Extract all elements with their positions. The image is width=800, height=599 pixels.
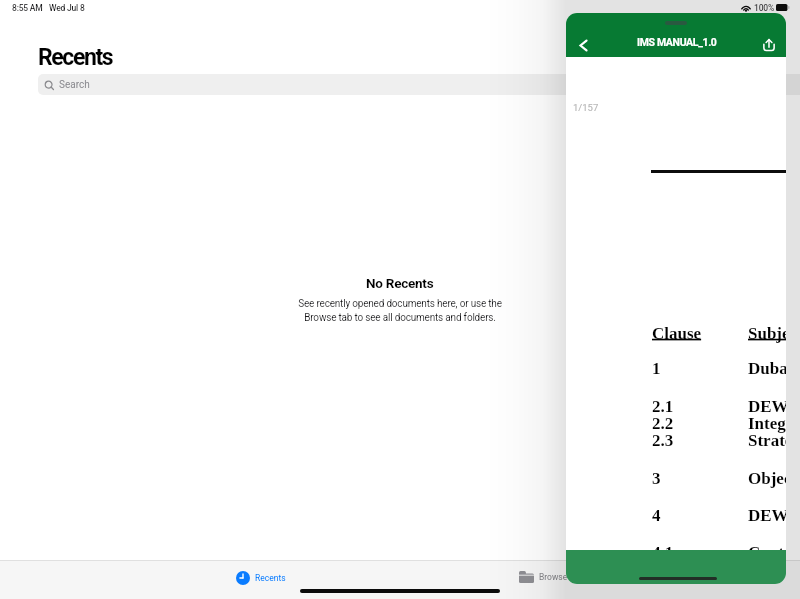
- staticText: Wed Jul 8: [49, 3, 85, 13]
- staticText: 4.1: [652, 543, 748, 562]
- staticText: 8:55 AM: [12, 3, 43, 13]
- staticText: IMS MANUAL_1.0: [637, 36, 717, 48]
- button[interactable]: Share: [756, 32, 782, 58]
- staticText: 2.3: [652, 431, 748, 450]
- staticText: 100%: [754, 3, 774, 13]
- staticText: Strategic Planning: [748, 431, 786, 450]
- staticText: 2.2: [652, 414, 748, 433]
- staticText: 1/157: [573, 102, 599, 113]
- staticText: 4: [652, 506, 748, 525]
- staticText: Objective and Scope: [748, 469, 786, 488]
- button[interactable]: Back: [570, 32, 596, 58]
- staticText: 3: [652, 469, 748, 488]
- staticText: Subject: [748, 324, 786, 343]
- staticText: 2.1: [652, 397, 748, 416]
- staticText: Clause: [652, 324, 748, 343]
- staticText: DEWA Integrated: [748, 506, 786, 525]
- button[interactable]: Recents: [236, 571, 286, 585]
- staticText: Dubai Electricity: [748, 359, 786, 378]
- staticText: Recents: [38, 44, 113, 71]
- staticText: Integrated Management: [748, 414, 786, 433]
- button[interactable]: Search: [38, 74, 800, 95]
- staticText: Context: [748, 543, 786, 562]
- staticText: See recently opened documents here, or u…: [298, 298, 502, 323]
- button[interactable]: Browse: [519, 571, 568, 583]
- staticText: No Recents: [366, 275, 434, 291]
- staticText: Search: [59, 79, 90, 91]
- staticText: Recents: [255, 573, 286, 583]
- staticText: 1: [652, 359, 748, 378]
- staticText: Browse: [539, 572, 568, 582]
- staticText: DEWA Vision: [748, 397, 786, 416]
